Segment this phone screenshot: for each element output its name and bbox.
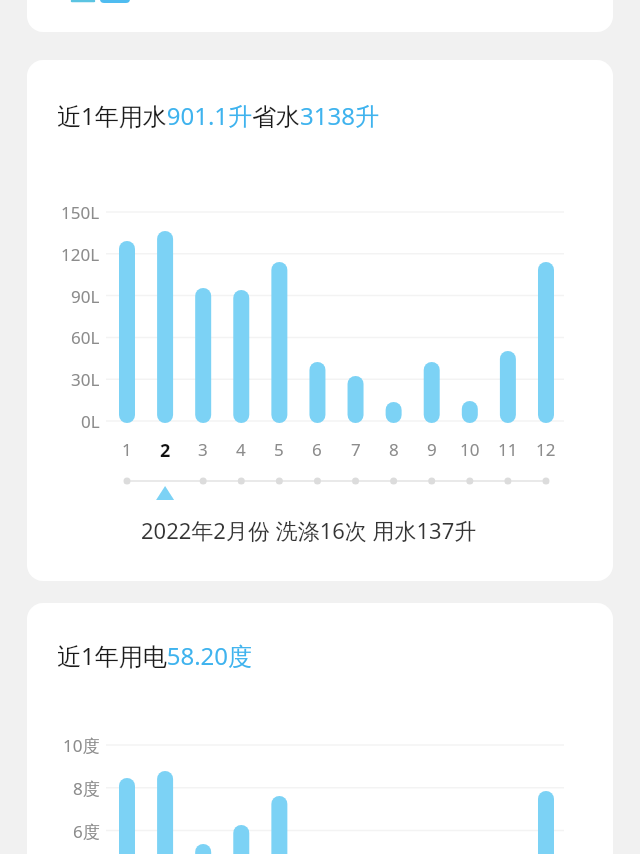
- button[interactable]: [117, 468, 557, 504]
- staticText: 10度: [63, 734, 100, 756]
- button[interactable]: 11: [489, 438, 527, 460]
- staticText: 90L: [71, 285, 100, 307]
- staticText: 6: [312, 438, 322, 460]
- staticText: 120L: [61, 243, 100, 265]
- button[interactable]: [66, 0, 100, 6]
- staticText: 2022年2月份 洗涤16次 用水137升: [141, 515, 477, 545]
- staticText: 12: [536, 438, 556, 460]
- button[interactable]: [96, 0, 129, 8]
- staticText: 7: [351, 438, 361, 460]
- staticText: 9: [427, 438, 437, 460]
- button[interactable]: 8: [375, 438, 413, 460]
- staticText: 8: [389, 438, 399, 460]
- staticText: 11: [498, 438, 518, 460]
- button[interactable]: 2: [146, 438, 184, 460]
- button[interactable]: 5: [260, 438, 298, 460]
- button[interactable]: 3: [184, 438, 222, 460]
- staticText: 5: [274, 438, 284, 460]
- staticText: 6度: [73, 820, 100, 842]
- staticText: 60L: [71, 326, 100, 348]
- button[interactable]: 9: [413, 438, 451, 460]
- staticText: 150L: [61, 201, 100, 223]
- staticText: 0L: [81, 410, 100, 432]
- staticText: 30L: [71, 368, 100, 390]
- staticText: 3: [198, 438, 208, 460]
- staticText: 2: [160, 438, 171, 460]
- button[interactable]: 6: [298, 438, 336, 460]
- button[interactable]: 10: [451, 438, 489, 460]
- button[interactable]: 4: [222, 438, 260, 460]
- staticText: 4: [236, 438, 246, 460]
- button[interactable]: 12: [527, 438, 565, 460]
- button[interactable]: 7: [337, 438, 375, 460]
- staticText: 1: [122, 438, 132, 460]
- staticText: 近1年用电58.20度: [57, 639, 253, 672]
- staticText: 8度: [73, 777, 100, 799]
- staticText: 10: [460, 438, 480, 460]
- staticText: 近1年用水901.1升省水3138升: [57, 99, 379, 132]
- button[interactable]: 1: [108, 438, 146, 460]
